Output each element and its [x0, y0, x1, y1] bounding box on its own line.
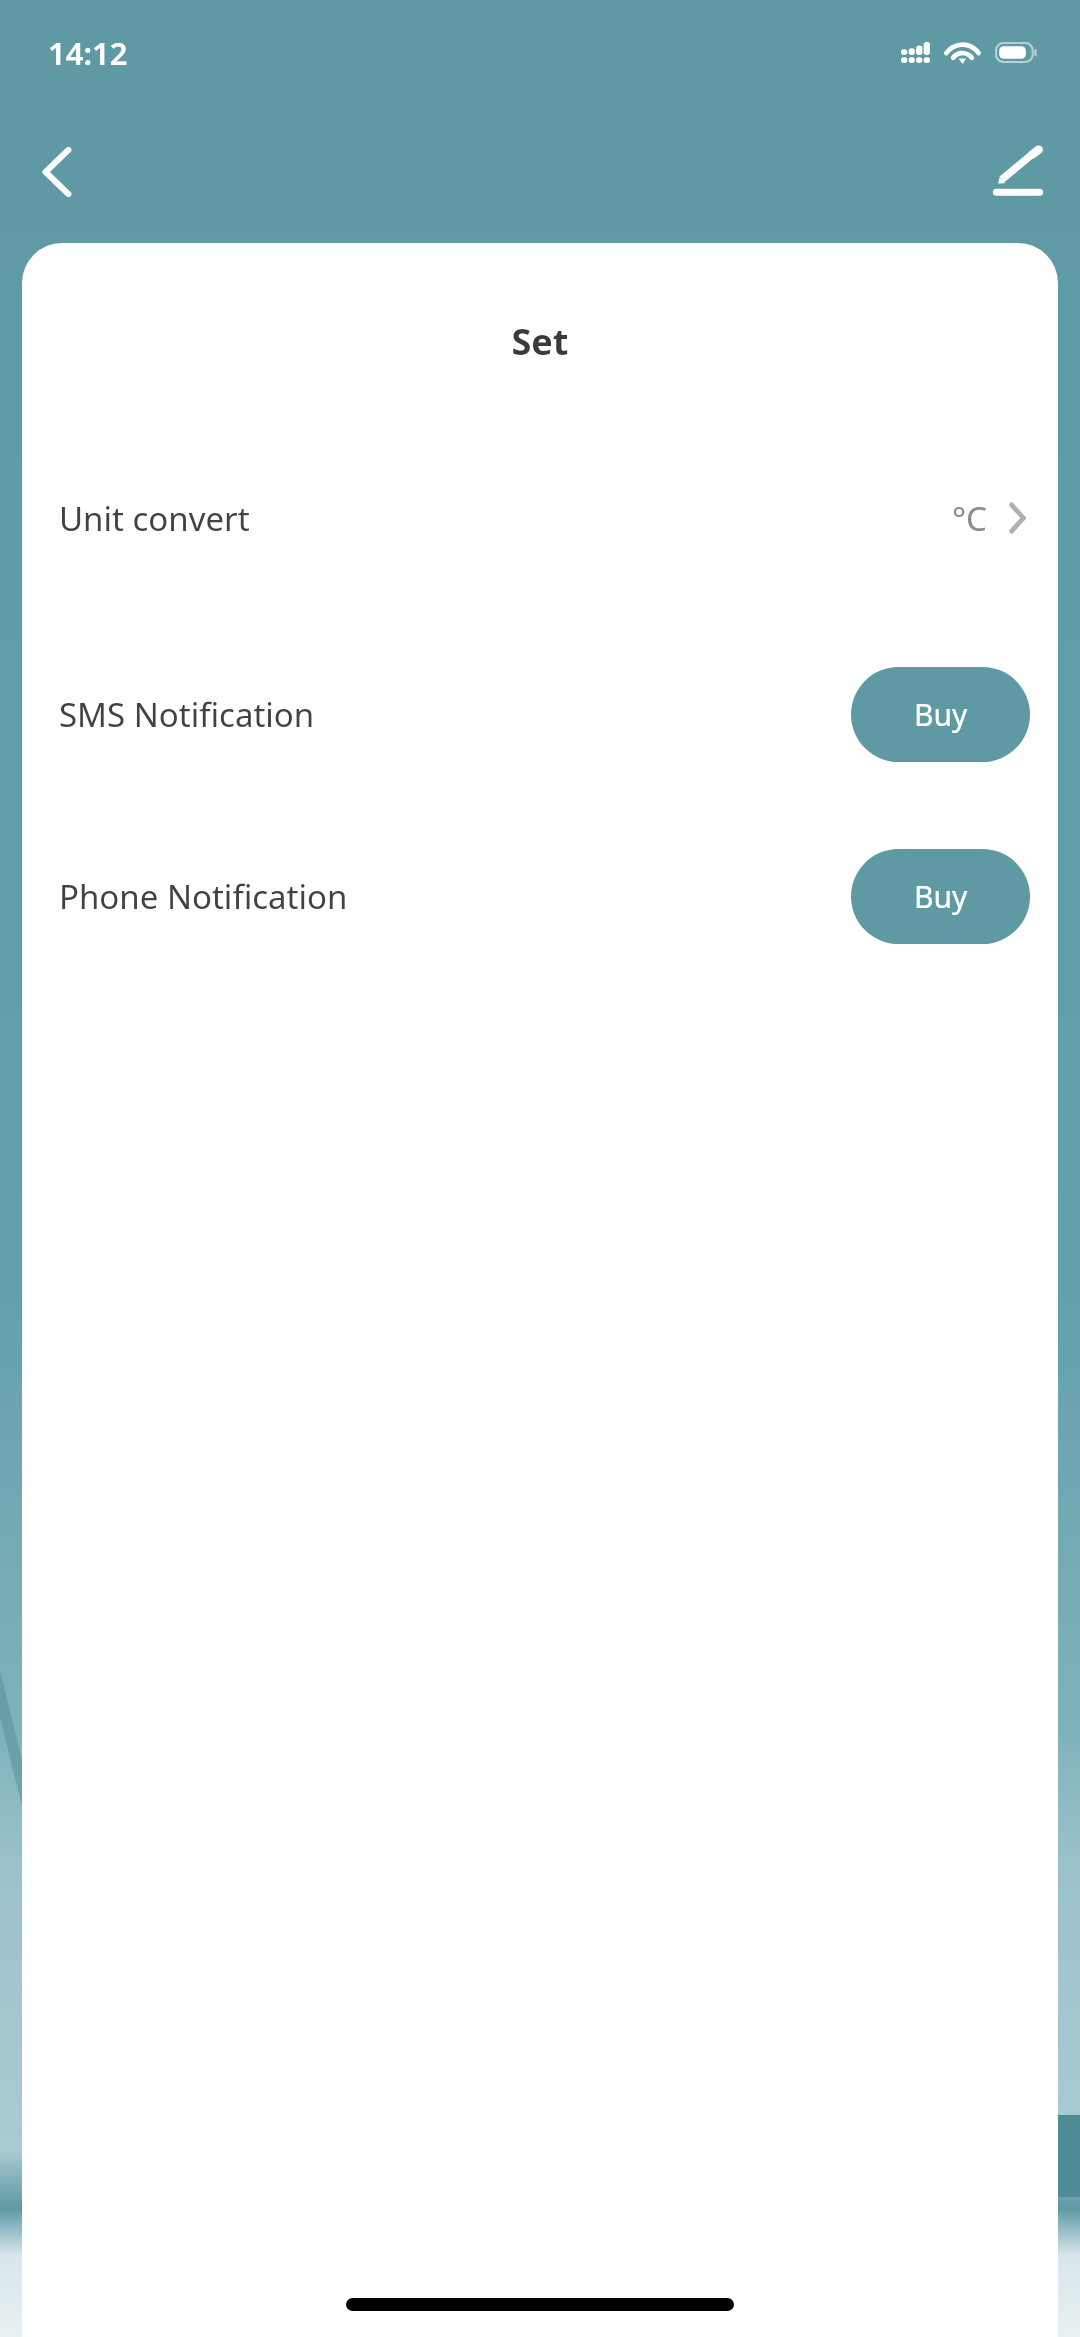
button[interactable]: Buy: [851, 667, 1030, 762]
staticText: Unit convert: [59, 496, 250, 541]
button[interactable]: Edit: [976, 130, 1060, 214]
staticText: Phone Notification: [59, 874, 348, 919]
button[interactable]: Back: [18, 133, 96, 211]
staticText: 14:12: [48, 32, 128, 74]
button[interactable]: Unit convert: [22, 475, 1058, 561]
staticText: Buy: [914, 694, 968, 735]
staticText: Set: [22, 317, 1058, 366]
staticText: °C: [952, 496, 987, 541]
button[interactable]: Buy: [851, 849, 1030, 944]
staticText: SMS Notification: [59, 692, 315, 737]
staticText: Buy: [914, 876, 968, 917]
